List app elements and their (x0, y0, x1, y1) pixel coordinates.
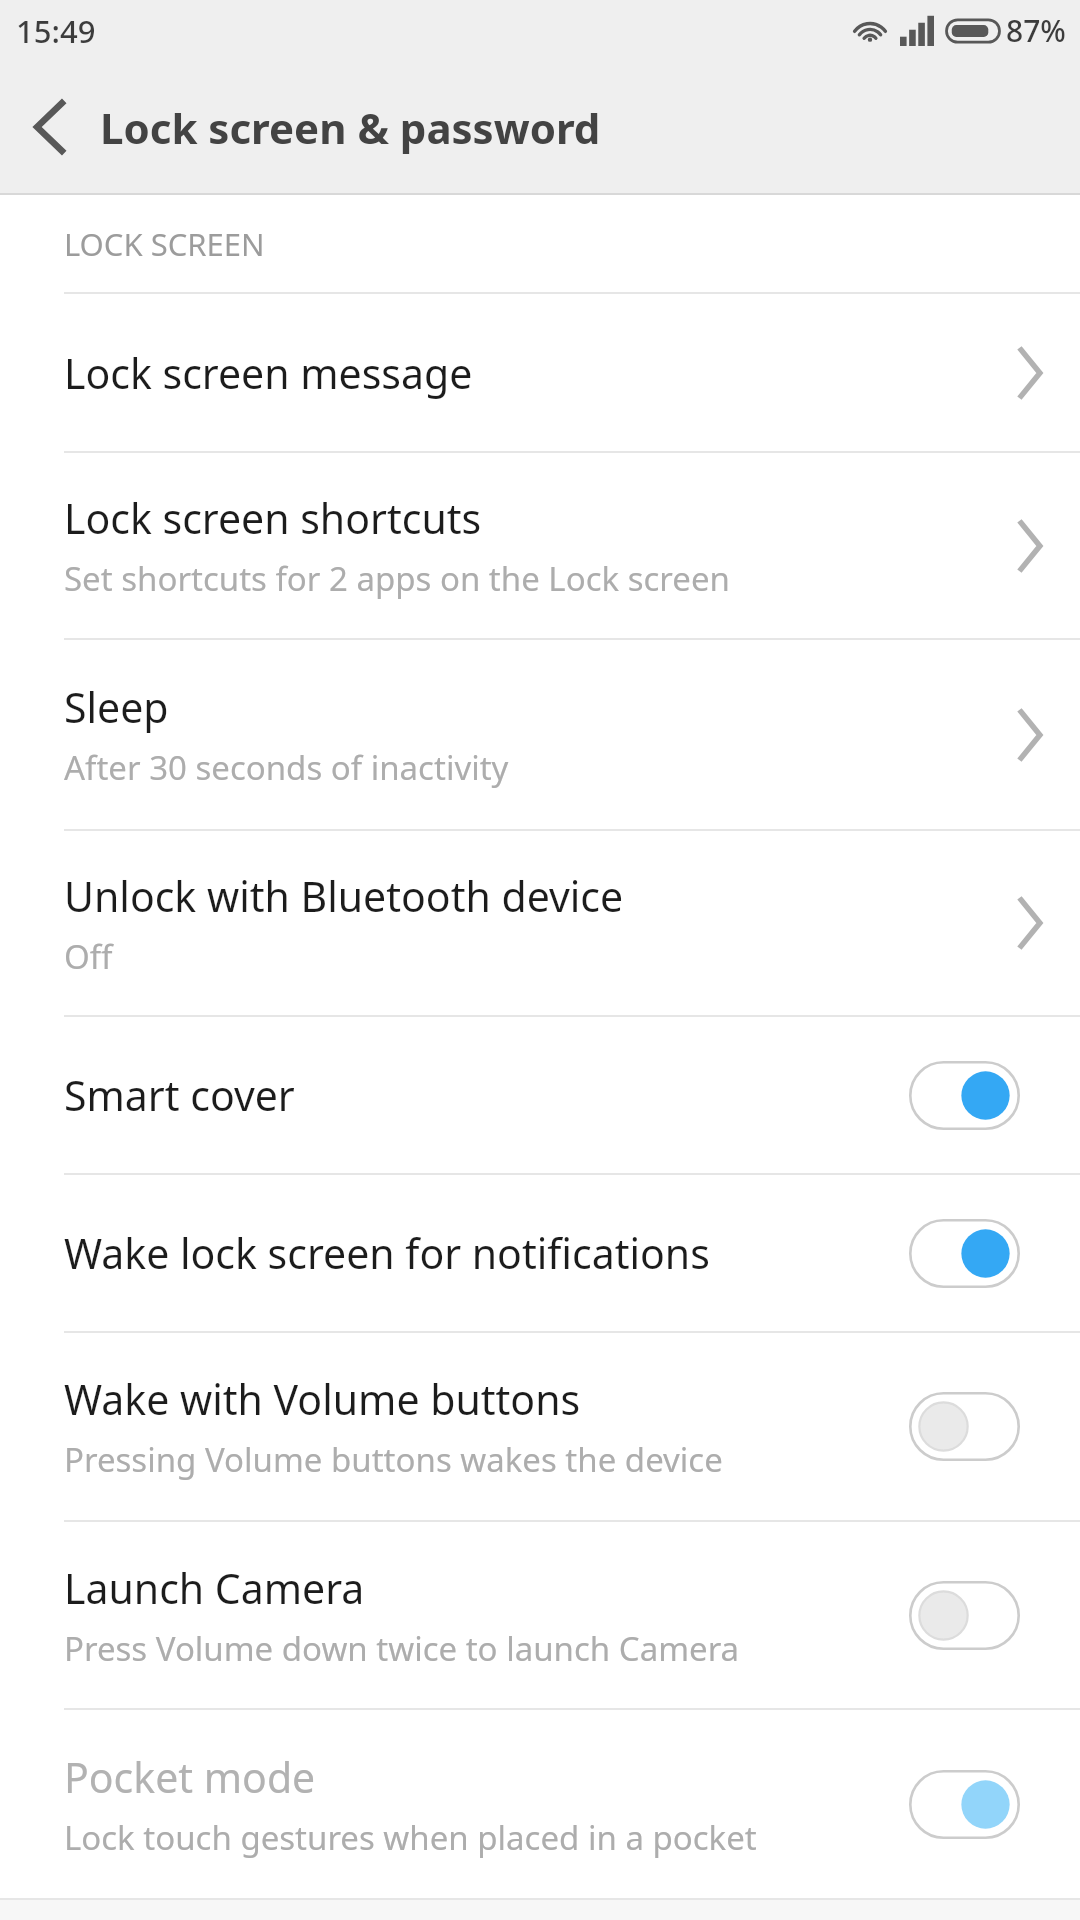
staticText: Pressing Volume buttons wakes the device (64, 1437, 723, 1482)
button[interactable]: Lock screen message (0, 294, 1080, 451)
staticText: Launch Camera (64, 1560, 365, 1616)
button[interactable]: Smart cover (0, 1017, 1080, 1173)
staticText: Wake lock screen for notifications (64, 1225, 710, 1281)
button[interactable]: Unlock with Bluetooth device (0, 831, 1080, 1015)
button[interactable]: Launch Camera (0, 1522, 1080, 1708)
staticText: 87% (1006, 10, 1066, 51)
staticText: 15:49 (16, 10, 96, 52)
button[interactable]: Sleep (0, 640, 1080, 829)
button[interactable]: Pocket mode (909, 1770, 1020, 1839)
staticText: After 30 seconds of inactivity (64, 745, 509, 790)
button[interactable]: Wake with Volume buttons (909, 1392, 1020, 1461)
button[interactable]: Lock screen shortcuts (0, 453, 1080, 638)
staticText: Press Volume down twice to launch Camera (64, 1626, 740, 1671)
staticText: Lock touch gestures when placed in a poc… (64, 1815, 757, 1860)
staticText: Lock screen shortcuts (64, 490, 482, 546)
button[interactable]: Launch Camera (909, 1581, 1020, 1650)
staticText: Lock screen message (64, 345, 473, 401)
staticText: Sleep (64, 679, 169, 735)
button[interactable]: Pocket mode (0, 1710, 1080, 1898)
button[interactable]: Wake lock screen for notifications (909, 1219, 1020, 1288)
staticText: LOCK SCREEN (64, 223, 265, 265)
staticText: Smart cover (64, 1067, 295, 1123)
staticText: Unlock with Bluetooth device (64, 868, 624, 924)
button[interactable]: Smart cover (909, 1061, 1020, 1130)
staticText: Off (64, 934, 113, 979)
staticText: Lock screen & password (100, 99, 601, 156)
staticText: Wake with Volume buttons (64, 1371, 581, 1427)
staticText: Set shortcuts for 2 apps on the Lock scr… (64, 556, 730, 601)
button[interactable]: Wake with Volume buttons (0, 1333, 1080, 1520)
button[interactable]: Back (0, 61, 100, 193)
button[interactable]: Wake lock screen for notifications (0, 1175, 1080, 1331)
staticText: Pocket mode (64, 1749, 316, 1805)
